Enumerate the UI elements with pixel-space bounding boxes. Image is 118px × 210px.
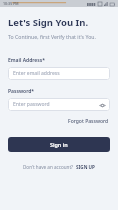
staticText: To Continue, first Verify that it's You. (8, 33, 96, 40)
staticText: Let's Sign You In. (8, 16, 89, 29)
staticText: Don't have an account? (23, 164, 74, 170)
staticText: Forgot Password (68, 118, 109, 125)
staticText: 10:35 PM (3, 1, 19, 6)
staticText: Enter email address (13, 70, 60, 77)
button[interactable]: SIGN UP (76, 164, 95, 170)
button[interactable]: Forgot Password (67, 117, 110, 126)
staticText: Enter password (13, 101, 50, 108)
button[interactable]: Show password (98, 101, 106, 109)
button[interactable]: Sign in (8, 137, 110, 152)
button[interactable]: Enter email address (8, 67, 110, 80)
staticText: Password* (8, 88, 35, 95)
button[interactable]: Enter password (8, 98, 110, 111)
staticText: Sign in (50, 141, 68, 148)
staticText: SIGN UP (76, 164, 95, 170)
staticText: Email Address* (8, 57, 45, 64)
